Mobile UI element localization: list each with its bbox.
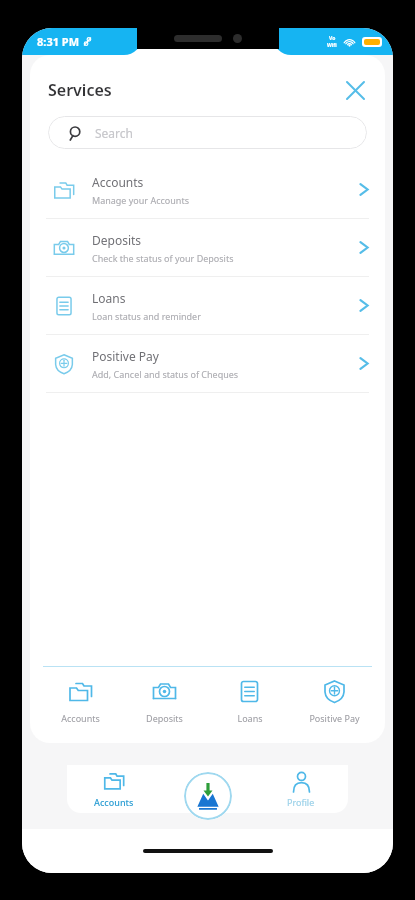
staticText: 8:31 PM [37,34,80,49]
staticText: Deposits [146,712,183,724]
button[interactable]: Search [48,116,367,149]
button[interactable]: Positive Pay [292,667,377,735]
staticText: Vo [329,35,336,42]
button[interactable]: Accounts [67,765,160,813]
staticText: Check the status of your Deposits [92,252,234,264]
button[interactable]: Loans [207,667,292,735]
staticText: Profile [287,796,315,808]
staticText: Accounts [92,174,144,190]
staticText: Manage your Accounts [92,194,189,206]
button[interactable]: Deposits [30,219,385,276]
button[interactable]: Loans [30,277,385,334]
button[interactable]: Positive Pay [30,335,385,392]
button[interactable]: Accounts [38,667,122,735]
staticText: Accounts [61,712,100,724]
staticText: Services [48,79,112,101]
button[interactable]: Profile [254,765,348,813]
staticText: Loans [237,712,263,724]
button[interactable]: Deposits [122,667,207,735]
staticText: Positive Pay [92,348,159,364]
staticText: Search [95,125,133,141]
staticText: Deposits [92,232,142,248]
staticText: Wifi [327,42,337,49]
staticText: Loans [92,290,126,306]
button[interactable]: Close [339,74,371,106]
staticText: Loan status and reminder [92,310,201,322]
button[interactable]: Home [184,772,232,820]
button[interactable]: Accounts [30,161,385,218]
staticText: Positive Pay [309,712,360,724]
staticText: Accounts [94,796,134,808]
staticText: Add, Cancel and status of Cheques [92,368,239,380]
